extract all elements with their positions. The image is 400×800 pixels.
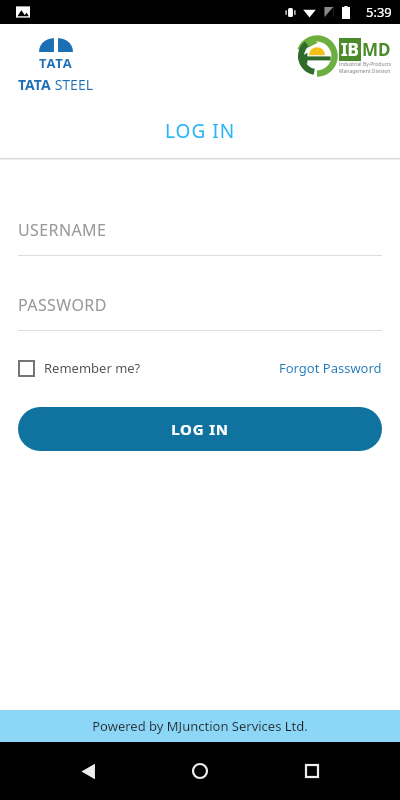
staticText: IB	[341, 38, 359, 61]
button[interactable]: Forgot Password	[279, 355, 382, 381]
staticText: MD	[362, 38, 391, 61]
staticText: LOG IN	[171, 419, 229, 439]
button[interactable]: Back	[64, 747, 112, 795]
button[interactable]: Recent apps	[288, 747, 336, 795]
staticText: Industrial By-Products	[339, 61, 392, 68]
button[interactable]: PASSWORD	[18, 294, 382, 331]
staticText: USERNAME	[18, 219, 107, 241]
staticText: Remember me?	[44, 359, 141, 377]
staticText: STEEL	[51, 75, 94, 94]
staticText: Forgot Password	[279, 359, 382, 377]
staticText: TATA	[39, 54, 73, 72]
button[interactable]: USERNAME	[18, 219, 382, 256]
staticText: TATA	[18, 75, 51, 94]
staticText: LOG IN	[165, 118, 236, 144]
staticText: 5:39	[366, 3, 392, 21]
button[interactable]: Remember me?	[18, 355, 141, 381]
staticText: PASSWORD	[18, 294, 107, 316]
staticText: Management Division	[339, 68, 391, 75]
button[interactable]: Home	[176, 747, 224, 795]
button[interactable]: LOG IN	[18, 407, 382, 451]
staticText: Powered by MJunction Services Ltd.	[92, 717, 308, 735]
